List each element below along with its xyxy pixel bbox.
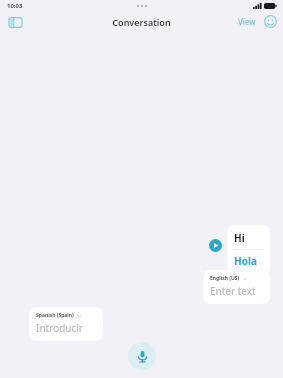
button[interactable]: Hi bbox=[227, 225, 270, 274]
button[interactable]: View bbox=[237, 13, 257, 30]
staticText: English (US) bbox=[210, 275, 240, 282]
button[interactable]: Play translation bbox=[209, 239, 222, 252]
staticText: Introducir texto bbox=[36, 321, 96, 335]
button[interactable]: English (US) bbox=[203, 270, 270, 304]
button[interactable]: Account bbox=[263, 14, 278, 29]
staticText: 10:03 bbox=[7, 2, 23, 10]
staticText: Hi bbox=[234, 231, 245, 245]
button[interactable]: Spanish (Spain) bbox=[29, 307, 103, 341]
staticText: Spanish (Spain) bbox=[36, 312, 74, 319]
button[interactable]: Record voice bbox=[128, 342, 156, 370]
button[interactable]: Show sidebar bbox=[6, 13, 24, 31]
staticText: Enter text bbox=[210, 284, 256, 298]
staticText: Conversation bbox=[112, 16, 171, 28]
staticText: View bbox=[238, 16, 256, 27]
staticText: Hola bbox=[234, 254, 257, 268]
